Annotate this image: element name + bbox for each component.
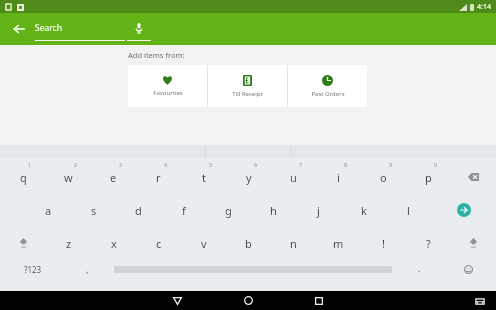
button[interactable]: Favourites [128,65,207,107]
staticText: ?123 [24,264,42,275]
button[interactable]: b [226,225,271,258]
button[interactable]: Space [108,258,398,291]
staticText: v [201,236,207,251]
staticText: 9 [389,161,393,168]
button[interactable]: Enter [431,192,496,225]
button[interactable]: d [116,192,161,225]
staticText: z [66,236,72,251]
button[interactable]: l [386,192,431,225]
staticText: p [425,170,432,185]
button[interactable]: Voice search [127,17,151,41]
staticText: 3 [119,161,123,168]
button[interactable]: 7 [271,158,316,192]
staticText: k [361,203,367,218]
button[interactable]: s [71,192,116,225]
button[interactable]: Backspace [451,158,496,192]
staticText: t [202,170,206,185]
button[interactable]: Home [225,291,271,310]
button[interactable]: v [181,225,226,258]
staticText: Favourites [153,89,183,97]
staticText: x [111,236,117,251]
button[interactable]: 1 [0,158,46,192]
button[interactable]: ? [406,225,451,258]
button[interactable]: 3 [91,158,136,192]
button[interactable]: Recents [296,291,342,310]
button[interactable]: 9 [361,158,406,192]
staticText: , [86,263,89,275]
staticText: 7 [299,161,303,168]
staticText: q [20,170,27,185]
staticText: ? [426,236,431,251]
button[interactable]: z [46,225,91,258]
staticText: g [225,203,232,218]
staticText: Till Receipt [232,90,263,98]
button[interactable]: h [251,192,296,225]
button[interactable]: f [161,192,206,225]
staticText: 4:14 [477,2,491,12]
staticText: 8 [344,161,348,168]
staticText: m [333,236,344,251]
staticText: j [317,203,320,218]
staticText: 4 [164,161,168,168]
button[interactable]: Hide keyboard [471,294,489,308]
staticText: 1 [28,161,32,168]
button[interactable]: j [296,192,341,225]
button[interactable]: Back [6,16,32,42]
staticText: 0 [434,161,438,168]
button[interactable]: g [206,192,251,225]
button[interactable]: n [271,225,316,258]
button[interactable]: Back [154,291,200,310]
staticText: c [156,236,162,251]
staticText: 6 [254,161,258,168]
button[interactable]: ! [361,225,406,258]
staticText: Search [35,22,62,34]
button[interactable]: c [136,225,181,258]
staticText: s [91,203,97,218]
button[interactable]: 5 [181,158,226,192]
button[interactable]: 4 [136,158,181,192]
staticText: l [407,203,410,218]
staticText: f [182,203,186,218]
staticText: d [135,203,142,218]
button[interactable]: , [66,258,108,291]
staticText: Add items from: [128,50,185,60]
staticText: w [64,170,73,185]
staticText: i [337,170,340,185]
button[interactable]: 2 [46,158,91,192]
button[interactable]: x [91,225,136,258]
staticText: b [245,236,252,251]
staticText: 5 [209,161,213,168]
button[interactable]: Search [35,13,153,45]
staticText: u [290,170,297,185]
button[interactable]: Past Orders [288,65,367,107]
button[interactable]: 0 [406,158,451,192]
staticText: y [246,170,252,185]
staticText: 2 [74,161,78,168]
button[interactable]: ?123 [0,258,66,291]
button[interactable]: a [26,192,71,225]
button[interactable]: Emoji [440,258,496,291]
staticText: h [270,203,277,218]
button[interactable]: Shift [451,225,496,258]
staticText: Past Orders [311,90,345,98]
button[interactable]: Till Receipt [208,65,287,107]
button[interactable]: 8 [316,158,361,192]
staticText: ! [382,236,385,251]
staticText: n [290,236,297,251]
staticText: r [156,170,161,185]
button[interactable]: 6 [226,158,271,192]
button[interactable]: m [316,225,361,258]
staticText: . [418,262,421,274]
button[interactable]: k [341,192,386,225]
staticText: e [110,170,117,185]
button[interactable]: Shift [0,225,46,258]
staticText: o [380,170,387,185]
staticText: a [45,203,52,218]
